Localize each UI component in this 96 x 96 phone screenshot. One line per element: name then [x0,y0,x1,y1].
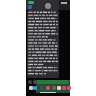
button[interactable]: Profile [45,3,51,9]
button[interactable]: App 1 [29,86,33,90]
button[interactable]: Attach [28,80,32,84]
button[interactable]: App 6 [57,86,61,90]
button[interactable]: App 5 [52,86,56,90]
button[interactable]: Camera [33,80,37,84]
button[interactable] [27,10,59,78]
button[interactable]: App 2 [33,86,37,90]
button[interactable] [36,80,69,84]
button[interactable]: App 7 [62,86,66,90]
button[interactable]: App 8 [67,86,71,90]
button[interactable]: App 4 [46,86,50,90]
button[interactable]: Back [28,5,32,9]
